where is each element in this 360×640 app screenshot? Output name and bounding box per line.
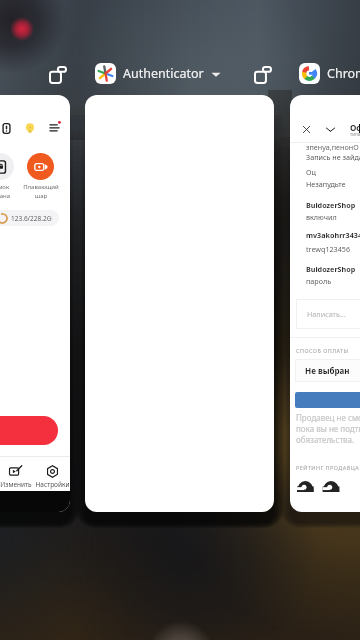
staticText: trewq123456 (306, 244, 351, 254)
staticText: BuldozerShop (306, 264, 356, 274)
staticText: BuldozerShop (306, 200, 356, 210)
button[interactable]: Split screen (254, 66, 272, 84)
staticText: 123.6/228.2G (11, 214, 52, 223)
button[interactable] (0, 416, 58, 445)
button[interactable]: Chrome (299, 62, 360, 85)
staticText: Незапудьте (306, 179, 346, 189)
staticText: Продавец не сможет пока вы не подтвердит… (296, 412, 360, 445)
button[interactable]: Настройки (22, 461, 70, 487)
staticText: Chrome (327, 65, 360, 82)
button[interactable]: Split screen (49, 66, 67, 84)
button[interactable] (27, 153, 54, 180)
button[interactable]: 123.6/228.2G (0, 210, 59, 226)
staticText: РЕЙТИНГ ПРОДАВЦА (296, 464, 360, 471)
staticText: mv3akohrr3434 (306, 230, 360, 240)
staticText: Запись не зайдает (306, 152, 360, 162)
button[interactable]: Изменить (0, 461, 45, 487)
button[interactable]: Authenticator (95, 62, 221, 85)
button[interactable] (0, 153, 14, 180)
button[interactable]: Написать... (296, 299, 360, 329)
button[interactable] (295, 392, 360, 408)
staticText: Плавающий шар (19, 183, 63, 199)
button[interactable] (85, 95, 274, 512)
staticText: Замок экрана (0, 183, 22, 199)
staticText: зпенуа,пенонО (306, 142, 359, 152)
staticText: типа (350, 131, 360, 137)
button[interactable]: Плавающий шар (0, 95, 70, 512)
button[interactable]: Close (290, 95, 360, 512)
staticText: СПОСОБ ОПЛАТЫ (296, 347, 349, 354)
staticText: Написать... (307, 309, 346, 319)
staticText: Оц (306, 167, 316, 177)
button[interactable]: Close (297, 120, 316, 139)
button[interactable]: Collapse (321, 120, 340, 139)
staticText: Authenticator (123, 65, 204, 82)
staticText: Настройки (35, 480, 70, 489)
staticText: Не выбран (305, 365, 350, 376)
staticText: включил (306, 212, 337, 222)
staticText: Оформление (350, 122, 360, 133)
staticText: пароль (306, 276, 332, 286)
button[interactable]: Не выбран (295, 359, 360, 382)
staticText: Изменить (0, 480, 32, 489)
